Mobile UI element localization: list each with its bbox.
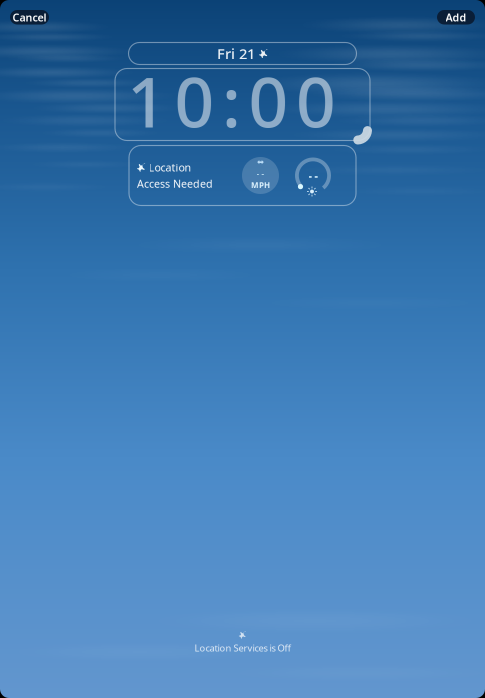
staticText: Location Services is Off: [194, 642, 290, 654]
staticText: Add: [445, 10, 466, 24]
staticText: 10:00: [127, 54, 336, 147]
button[interactable]: 10:00: [115, 68, 370, 140]
staticText: Location: [148, 160, 191, 174]
button[interactable]: Cancel: [10, 10, 49, 24]
button[interactable]: Location: [129, 145, 356, 205]
staticText: - -: [256, 168, 264, 179]
staticText: Fri 21: [217, 44, 255, 63]
staticText: Access Needed: [137, 176, 213, 191]
button[interactable]: Add: [437, 10, 475, 24]
staticText: MPH: [251, 180, 270, 190]
staticText: Cancel: [12, 10, 46, 24]
button[interactable]: Fri 21: [128, 42, 356, 64]
staticText: - -: [308, 168, 317, 183]
